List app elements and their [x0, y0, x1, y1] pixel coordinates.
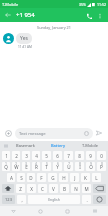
button[interactable]: D [27, 173, 35, 182]
button[interactable]: 3 [22, 151, 30, 160]
button[interactable]: 9 [86, 162, 95, 171]
button[interactable]: Back [3, 10, 13, 20]
button[interactable]: Recents [54, 206, 81, 216]
button[interactable]: 8 [75, 162, 84, 171]
staticText: 4 [35, 153, 38, 159]
button[interactable]: H [59, 173, 68, 182]
staticText: 4 [35, 162, 37, 166]
button[interactable]: K [81, 173, 90, 182]
staticText: F [40, 175, 43, 181]
button[interactable]: A [7, 173, 15, 182]
staticText: S [20, 175, 23, 181]
staticText: 0 [100, 153, 103, 159]
button[interactable]: L [92, 173, 101, 182]
button[interactable]: X [27, 184, 36, 193]
button[interactable]: English [28, 195, 80, 204]
staticText: X [30, 186, 33, 192]
staticText: A [10, 175, 13, 181]
button[interactable]: 0 [97, 151, 106, 160]
staticText: K [84, 175, 87, 181]
staticText: T [45, 164, 48, 170]
staticText: Z [19, 186, 22, 192]
staticText: C [41, 186, 44, 192]
button[interactable]: Attach [3, 128, 14, 139]
button[interactable]: Backspace [93, 184, 106, 193]
button[interactable]: 123 [2, 195, 15, 204]
staticText: T-Mobile [2, 2, 19, 7]
staticText: . [86, 197, 88, 203]
staticText: English [48, 197, 60, 202]
staticText: 2 [15, 153, 18, 159]
button[interactable]: N [71, 184, 80, 193]
staticText: Y [56, 164, 59, 170]
button[interactable]: 7 [64, 151, 73, 160]
staticText: Text message [19, 131, 46, 137]
button[interactable]: M [82, 184, 91, 193]
button[interactable]: Home [27, 206, 54, 216]
staticText: E [25, 164, 28, 170]
button[interactable]: 1 [2, 151, 10, 160]
button[interactable]: . [82, 195, 91, 204]
button[interactable]: 1 [2, 162, 10, 171]
staticText: 35% [79, 2, 86, 7]
button[interactable]: Z [16, 184, 25, 193]
button[interactable]: , [17, 195, 26, 204]
staticText: 6 [57, 162, 59, 166]
staticText: T-Mobile [74, 143, 106, 148]
button[interactable]: 2 [12, 162, 20, 171]
staticText: 1 [5, 153, 8, 159]
button[interactable]: More options [94, 10, 105, 21]
staticText: D [29, 175, 33, 181]
button[interactable]: Call [83, 10, 94, 21]
staticText: M [84, 186, 89, 192]
staticText: B [63, 186, 66, 192]
button[interactable]: 4 [32, 151, 40, 160]
button[interactable]: Shift [2, 184, 14, 193]
staticText: U [67, 164, 71, 170]
button[interactable]: 7 [64, 162, 73, 171]
button[interactable]: 9 [86, 151, 95, 160]
button[interactable]: 2 [12, 151, 20, 160]
button[interactable]: V [49, 184, 58, 193]
button[interactable]: 3 [22, 162, 30, 171]
button[interactable]: 6 [53, 162, 62, 171]
staticText: 2 [15, 162, 17, 166]
button[interactable]: Back [0, 206, 27, 216]
button[interactable]: 6 [53, 151, 62, 160]
staticText: 9 [90, 162, 92, 166]
button[interactable]: Text message [15, 128, 93, 139]
staticText: 5 [45, 153, 48, 159]
button[interactable]: 5 [42, 162, 51, 171]
staticText: 0 [101, 162, 103, 166]
button[interactable]: 8 [75, 151, 84, 160]
staticText: G [51, 175, 55, 181]
button[interactable]: F [37, 173, 46, 182]
button[interactable]: 4 [32, 162, 40, 171]
staticText: 9 [89, 153, 92, 159]
button[interactable]: Keyboard menu [2, 142, 9, 149]
button[interactable]: Enter [93, 195, 106, 204]
staticText: 6 [56, 153, 59, 159]
button[interactable]: Send [93, 127, 105, 139]
staticText: 1 [5, 162, 7, 166]
button[interactable]: C [38, 184, 47, 193]
button[interactable]: J [70, 173, 79, 182]
staticText: Sunday, January 21 [0, 25, 108, 30]
staticText: W [14, 164, 19, 170]
button[interactable]: 0 [97, 162, 106, 171]
staticText: 7 [67, 153, 70, 159]
staticText: 11:41 AM [18, 45, 32, 49]
button[interactable]: G [48, 173, 57, 182]
staticText: O [89, 164, 93, 170]
staticText: +1 954 [16, 11, 35, 19]
staticText: 5 [46, 162, 48, 166]
button[interactable]: 5 [42, 151, 51, 160]
staticText: I [79, 164, 81, 170]
button[interactable]: S [17, 173, 25, 182]
staticText: 8 [78, 153, 81, 159]
staticText: H [62, 175, 66, 181]
button[interactable]: B [60, 184, 69, 193]
staticText: Yes [20, 35, 28, 42]
button[interactable]: Menu [81, 206, 108, 216]
button[interactable]: Yes [20, 35, 28, 42]
